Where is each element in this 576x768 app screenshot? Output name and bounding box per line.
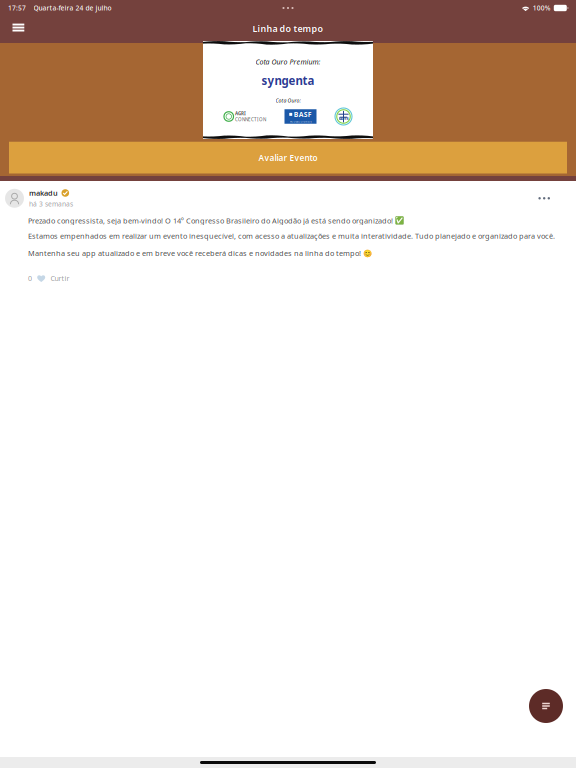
staticText: Estamos empenhados em realizar um evento…: [28, 231, 555, 241]
staticText: 100%: [533, 3, 551, 13]
staticText: syngenta: [261, 73, 314, 88]
staticText: Linha do tempo: [252, 22, 323, 35]
staticText: Curtir: [50, 273, 69, 283]
button[interactable]: Filter posts: [529, 689, 563, 723]
staticText: AGRI: [235, 110, 246, 116]
staticText: 17:57: [8, 3, 26, 13]
staticText: We create chemistry: [289, 120, 311, 123]
staticText: BASF: [294, 110, 312, 119]
staticText: makadu: [29, 188, 58, 198]
staticText: Quarta-feira 24 de julho: [33, 3, 111, 13]
staticText: Prezado congressista, seja bem-vindo! O …: [28, 216, 404, 226]
button[interactable]: Avaliar Evento: [9, 142, 567, 173]
staticText: Avaliar Evento: [258, 152, 317, 163]
staticText: Mantenha seu app atualizado e em breve v…: [28, 248, 372, 258]
staticText: Cota Ouro Premium:: [255, 57, 320, 67]
button[interactable]: More options: [530, 190, 558, 206]
staticText: Cota Ouro:: [275, 97, 300, 104]
staticText: BAYER: [338, 117, 348, 121]
button[interactable]: Menu: [0, 16, 36, 43]
staticText: 0: [28, 273, 32, 283]
staticText: há 3 semanas: [29, 199, 73, 209]
button[interactable]: 0: [28, 267, 69, 289]
staticText: CONNECTION: [235, 116, 266, 123]
